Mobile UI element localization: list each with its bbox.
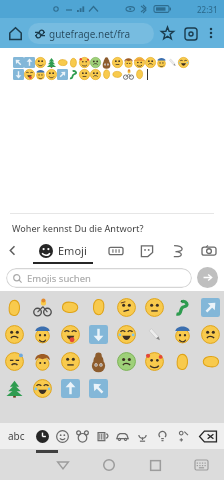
button[interactable]: Emoji [84, 294, 112, 321]
button[interactable]: Emoji [84, 348, 112, 375]
button[interactable]: gutefrage.net/fra [28, 23, 154, 44]
button[interactable]: Symbols [172, 423, 192, 449]
staticText: abc [8, 429, 25, 443]
button[interactable]: Emoji [168, 321, 196, 348]
button[interactable]: Home [4, 22, 26, 44]
button[interactable]: Emoji [84, 375, 112, 402]
button[interactable]: Emoji [112, 321, 140, 348]
button[interactable]: Emoji [196, 294, 224, 321]
button[interactable]: GIF [101, 237, 131, 264]
button[interactable]: Emoji [140, 348, 168, 375]
button[interactable]: Bookmark [156, 22, 179, 45]
button[interactable]: Camera [193, 237, 224, 264]
button[interactable]: Stickers [131, 237, 162, 264]
button[interactable]: Emoji [56, 348, 84, 375]
button[interactable]: Emoji [28, 294, 56, 321]
button[interactable]: Tabs [179, 22, 202, 45]
button[interactable]: Smileys [52, 423, 72, 449]
button[interactable]: Emoji [140, 294, 168, 321]
button[interactable]: Food [92, 423, 112, 449]
button[interactable]: Objects [152, 423, 172, 449]
button[interactable]: Emoji [0, 375, 28, 402]
button[interactable]: Shapes [162, 237, 193, 264]
button[interactable]: Emoji [112, 348, 140, 375]
button[interactable]: More options [202, 24, 220, 42]
button[interactable]: Animals [72, 423, 92, 449]
button[interactable]: Emoji [168, 294, 196, 321]
staticText: Woher kennst Du die Antwort? [12, 222, 144, 234]
button[interactable]: Emoji [0, 321, 28, 348]
button[interactable]: Keyboard [188, 452, 214, 478]
staticText: Emoji [58, 243, 87, 258]
button[interactable]: Emoji [0, 348, 28, 375]
button[interactable]: Travel [112, 423, 132, 449]
button[interactable]: Emoji [28, 375, 56, 402]
button[interactable]: Emoji [196, 348, 224, 375]
button[interactable]: abc [0, 423, 32, 449]
button[interactable]: Emoji [84, 321, 112, 348]
button[interactable]: Emoji [56, 294, 84, 321]
staticText: Emojis suchen [27, 272, 91, 285]
button[interactable]: Back [50, 452, 76, 478]
button[interactable]: Home [96, 452, 122, 478]
button[interactable]: Emoji [28, 348, 56, 375]
button[interactable]: Emoji [56, 375, 84, 402]
button[interactable]: Back [0, 237, 25, 264]
button[interactable]: Emoji [140, 321, 168, 348]
staticText: 22:31 [197, 4, 218, 15]
button[interactable]: Emoji [168, 348, 196, 375]
button[interactable]: Backspace [192, 423, 224, 449]
button[interactable]: Recent apps [142, 452, 168, 478]
button[interactable]: Activities [132, 423, 152, 449]
button[interactable]: Recent [32, 423, 52, 449]
button[interactable]: Emoji [196, 321, 224, 348]
button[interactable]: Emoji [112, 294, 140, 321]
button[interactable]: Emoji [25, 237, 101, 264]
button[interactable]: Emojis suchen [6, 268, 192, 288]
button[interactable]: Emoji [28, 321, 56, 348]
staticText: gutefrage.net/fra [49, 27, 131, 41]
button[interactable]: Send [197, 267, 218, 288]
button[interactable]: Emoji [0, 294, 28, 321]
button[interactable]: Emoji [56, 321, 84, 348]
